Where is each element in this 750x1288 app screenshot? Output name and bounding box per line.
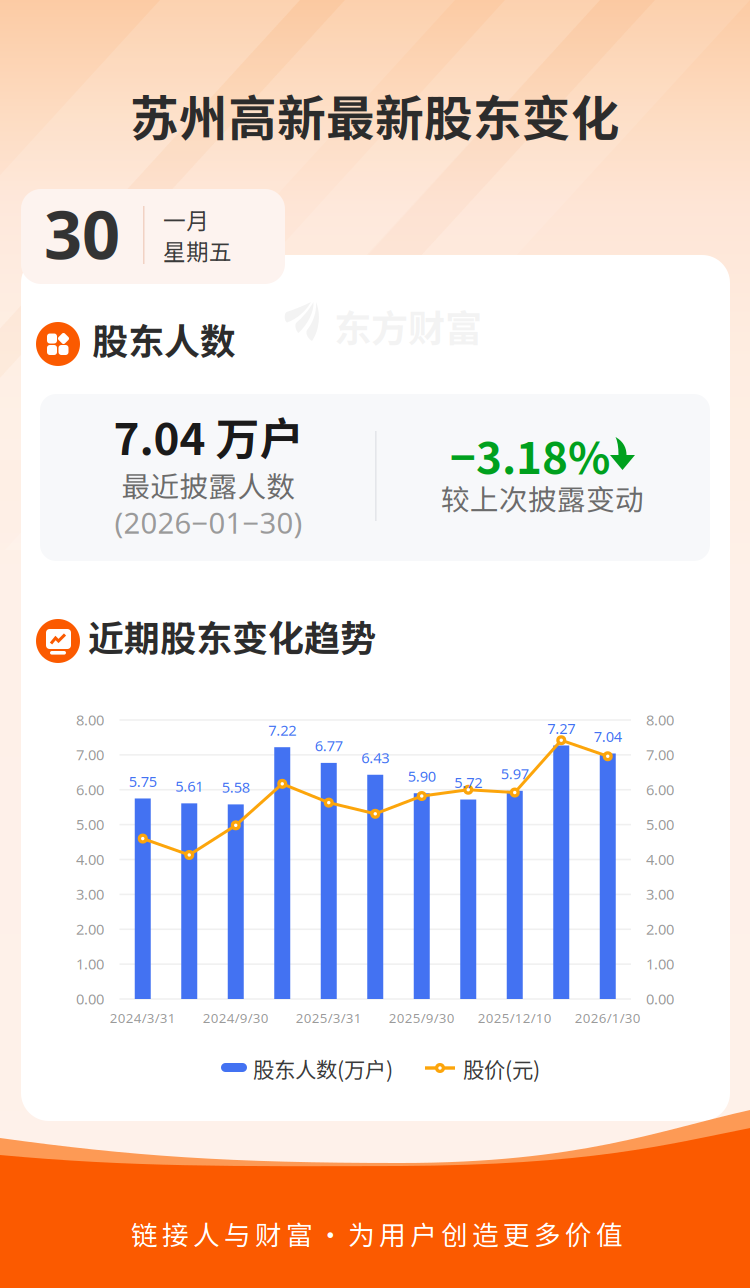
- staticText: 2026/1/30: [575, 1009, 641, 1027]
- staticText: 5.72: [454, 772, 482, 792]
- staticText: 5.90: [408, 766, 436, 786]
- staticText: 6.00: [646, 780, 674, 799]
- staticText: 7.22: [268, 720, 296, 740]
- staticText: 7.04 万户: [113, 404, 303, 468]
- staticText: 股东人数(万户): [253, 1053, 393, 1084]
- staticText: 2025/12/10: [478, 1009, 552, 1027]
- staticText: 6.77: [315, 736, 343, 755]
- staticText: 2024/3/31: [110, 1009, 176, 1027]
- staticText: 2.00: [646, 919, 674, 939]
- staticText: 4.00: [76, 849, 104, 869]
- staticText: 2025/9/30: [389, 1009, 455, 1027]
- staticText: 6.43: [361, 748, 389, 767]
- staticText: −3.18%: [450, 423, 610, 487]
- staticText: 最近披露人数: [121, 464, 295, 505]
- staticText: 8.00: [646, 710, 674, 729]
- staticText: 30: [44, 189, 120, 277]
- staticText: 5.58: [222, 777, 250, 797]
- staticText: (2026−01−30): [114, 503, 302, 542]
- staticText: 3.00: [646, 884, 674, 904]
- staticText: 星期五: [163, 234, 232, 267]
- staticText: 苏州高新最新股东变化: [130, 80, 620, 150]
- staticText: 0.00: [646, 989, 674, 1008]
- staticText: 链接人与财富·为用户创造更多价值: [131, 1214, 623, 1253]
- staticText: 1.00: [76, 954, 104, 974]
- staticText: 5.61: [175, 776, 203, 796]
- staticText: 4.00: [646, 849, 674, 869]
- staticText: 股东人数: [92, 313, 236, 365]
- staticText: 1.00: [646, 954, 674, 974]
- staticText: 3.00: [76, 884, 104, 904]
- staticText: 5.97: [501, 764, 529, 783]
- staticText: 较上次披露变动: [441, 477, 644, 518]
- staticText: 7.00: [646, 745, 674, 764]
- staticText: 0.00: [76, 989, 104, 1008]
- staticText: 2024/9/30: [203, 1009, 269, 1027]
- staticText: 7.04: [594, 726, 622, 746]
- staticText: 7.27: [547, 718, 575, 738]
- button[interactable]: 苏州高新最新股东变化: [0, 80, 750, 150]
- staticText: 7.00: [76, 745, 104, 764]
- staticText: 近期股东变化趋势: [88, 610, 376, 662]
- staticText: 5.00: [76, 815, 104, 834]
- staticText: 一月: [163, 203, 209, 236]
- staticText: 2.00: [76, 919, 104, 939]
- staticText: 8.00: [76, 710, 104, 729]
- staticText: 股价(元): [463, 1053, 540, 1084]
- staticText: 2025/3/31: [296, 1009, 362, 1027]
- staticText: 6.00: [76, 780, 104, 799]
- staticText: 5.00: [646, 815, 674, 834]
- staticText: 5.75: [129, 771, 157, 791]
- staticText: 东方财富: [334, 299, 482, 353]
